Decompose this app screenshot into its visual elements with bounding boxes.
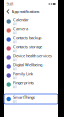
button[interactable]: Calendar (4, 17, 58, 26)
button[interactable]: Family Link (4, 71, 58, 80)
staticText: 9:41 (6, 1, 13, 7)
staticText: All (13, 85, 17, 89)
staticText: All (13, 40, 17, 44)
staticText: Device health services (13, 53, 52, 58)
staticText: All (13, 22, 17, 26)
staticText: All (13, 58, 17, 62)
button[interactable]: Device health services (4, 53, 58, 62)
staticText: App notifications (11, 9, 39, 14)
staticText: All (13, 67, 17, 71)
button[interactable]: Digital Wellbeing (4, 62, 58, 71)
staticText: Fingerprints (13, 80, 34, 85)
button[interactable]: Contacts storage (4, 44, 58, 53)
staticText: Contacts storage (13, 44, 42, 49)
staticText: All (13, 100, 17, 103)
button[interactable]: Back (6, 8, 10, 14)
staticText: Family Link (13, 71, 33, 76)
button[interactable]: Fingerprints (4, 80, 58, 89)
staticText: All (13, 76, 17, 80)
staticText: Contacts backup (13, 35, 41, 40)
button[interactable]: SmartThings (4, 94, 58, 104)
staticText: Calendar (13, 17, 29, 22)
staticText: Camera (13, 26, 28, 31)
staticText: SmartThings (13, 95, 35, 100)
button[interactable]: Contacts backup (4, 35, 58, 44)
button[interactable]: Camera (4, 26, 58, 35)
staticText: All (13, 31, 17, 35)
staticText: Digital Wellbeing (13, 62, 42, 67)
staticText: All (13, 49, 17, 53)
